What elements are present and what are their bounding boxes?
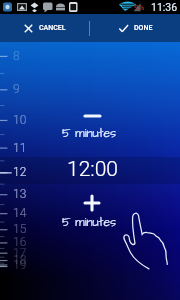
staticText: 9% xyxy=(134,3,145,12)
staticText: 16 xyxy=(13,235,27,249)
staticText: 19 xyxy=(13,258,27,272)
staticText: 12 xyxy=(13,165,27,179)
staticText: 5 minutes xyxy=(0,214,178,231)
staticText: 11:36 xyxy=(151,1,178,13)
button[interactable]: DONE xyxy=(90,14,180,42)
staticText: 8 xyxy=(13,49,20,63)
staticText: 9 xyxy=(13,82,20,96)
button[interactable]: CANCEL xyxy=(0,14,89,42)
staticText: 17 xyxy=(13,246,27,260)
button[interactable]: Increase by 5 minutes xyxy=(72,191,112,215)
staticText: 13 xyxy=(13,187,27,201)
staticText: 10 xyxy=(13,113,27,127)
staticText: CANCEL xyxy=(39,24,66,32)
button[interactable]: Decrease by 5 minutes xyxy=(72,106,112,126)
staticText: DONE xyxy=(134,24,153,32)
staticText: 5 minutes xyxy=(0,125,178,142)
staticText: 12:00 xyxy=(5,157,180,182)
staticText: 18 xyxy=(13,253,27,267)
staticText: 14 xyxy=(13,206,27,220)
staticText: 11 xyxy=(13,141,27,155)
staticText: 15 xyxy=(13,222,27,236)
